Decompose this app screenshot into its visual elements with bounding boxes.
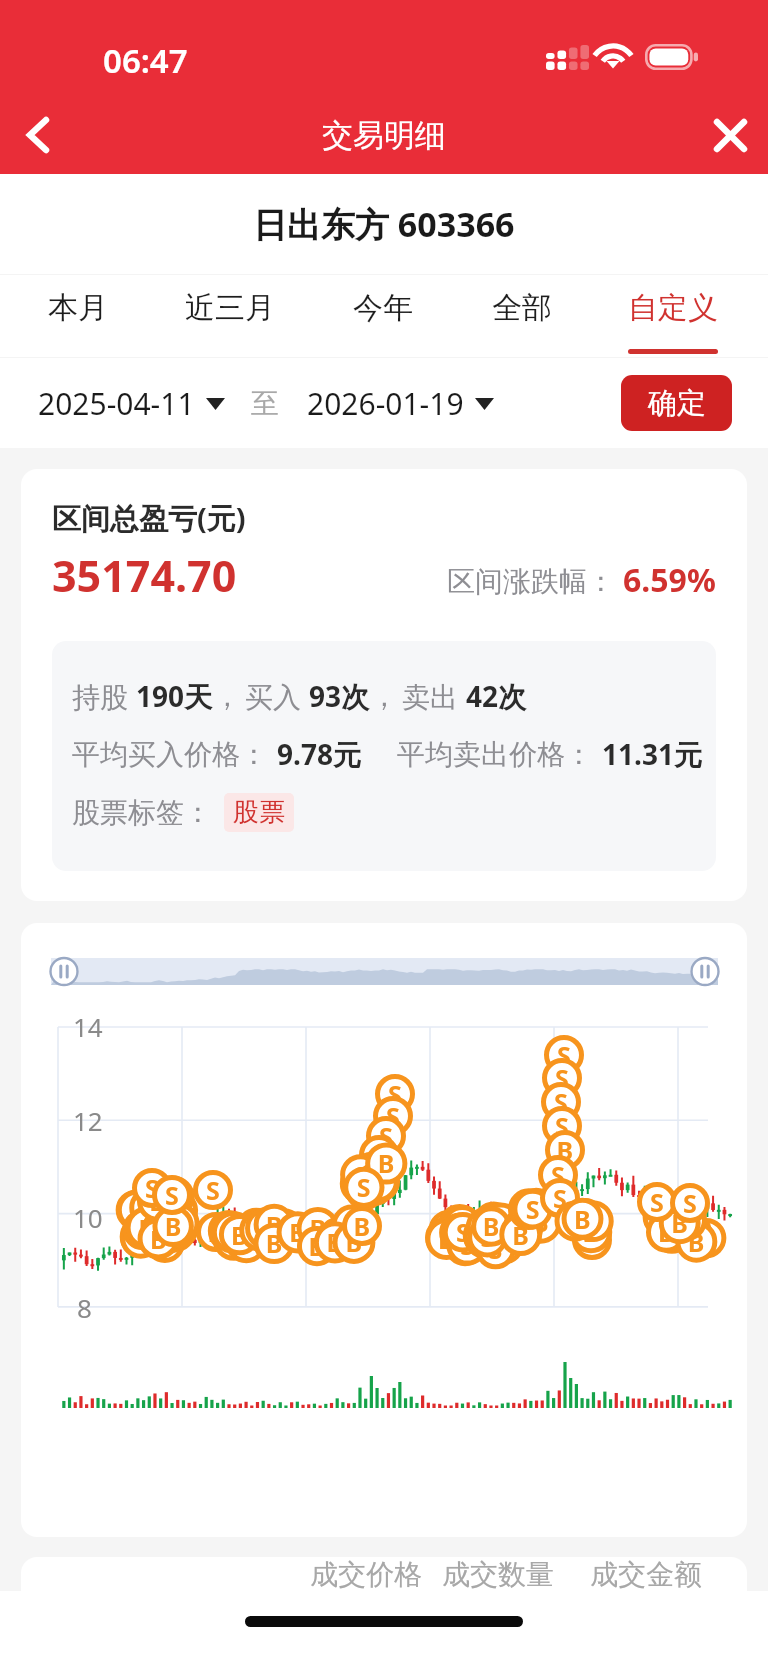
staticText: 9.78元	[277, 735, 361, 773]
staticText: 至	[251, 386, 279, 421]
staticText: 35174.70	[52, 546, 237, 605]
staticText: 自定义	[628, 289, 718, 327]
staticText: ，	[370, 679, 398, 714]
staticText: 日出东方 603366	[253, 201, 515, 247]
staticText: 14	[73, 1009, 103, 1044]
button[interactable]: 今年	[331, 275, 435, 357]
staticText: 持股	[72, 677, 136, 715]
staticText: 2025-04-11	[38, 383, 195, 424]
staticText: 卖出	[402, 677, 466, 715]
staticText: 06:47	[103, 38, 188, 83]
staticText: 平均买入价格：	[72, 737, 268, 772]
staticText: 2026-01-19	[307, 383, 464, 424]
staticText: 买入	[245, 677, 309, 715]
staticText: 近三月	[185, 289, 275, 327]
staticText: 成交金额	[590, 1557, 702, 1592]
staticText: 190天	[136, 677, 213, 715]
button[interactable]: 2025-04-11	[38, 383, 225, 424]
button[interactable]: 本月	[26, 275, 130, 357]
staticText: 今年	[353, 289, 413, 327]
staticText: 交易明细	[322, 116, 446, 155]
staticText: 股票	[233, 796, 285, 829]
staticText: 全部	[492, 289, 552, 327]
staticText: 6.59%	[623, 558, 716, 602]
button[interactable]: 自定义	[603, 275, 743, 357]
staticText: 42次	[466, 677, 527, 715]
staticText: 区间总盈亏(元)	[52, 498, 246, 538]
staticText: 8	[77, 1290, 92, 1325]
staticText: 11.31元	[602, 735, 702, 773]
button[interactable]: Close	[692, 97, 768, 173]
button[interactable]: 全部	[470, 275, 574, 357]
staticText: 确定	[648, 385, 706, 422]
staticText: 区间涨跌幅：	[447, 564, 615, 599]
staticText: 股票标签：	[72, 795, 212, 830]
staticText: 成交数量	[442, 1557, 554, 1592]
button[interactable]: 近三月	[160, 275, 300, 357]
staticText: 成交价格	[310, 1557, 422, 1592]
button[interactable]: Back	[0, 97, 76, 173]
staticText: 93次	[309, 677, 370, 715]
staticText: 本月	[48, 289, 108, 327]
button[interactable]: 2026-01-19	[307, 383, 494, 424]
staticText: 平均卖出价格：	[397, 737, 593, 772]
staticText: 12	[73, 1103, 103, 1138]
staticText: ，	[213, 679, 241, 714]
button[interactable]: 确定	[621, 375, 732, 431]
